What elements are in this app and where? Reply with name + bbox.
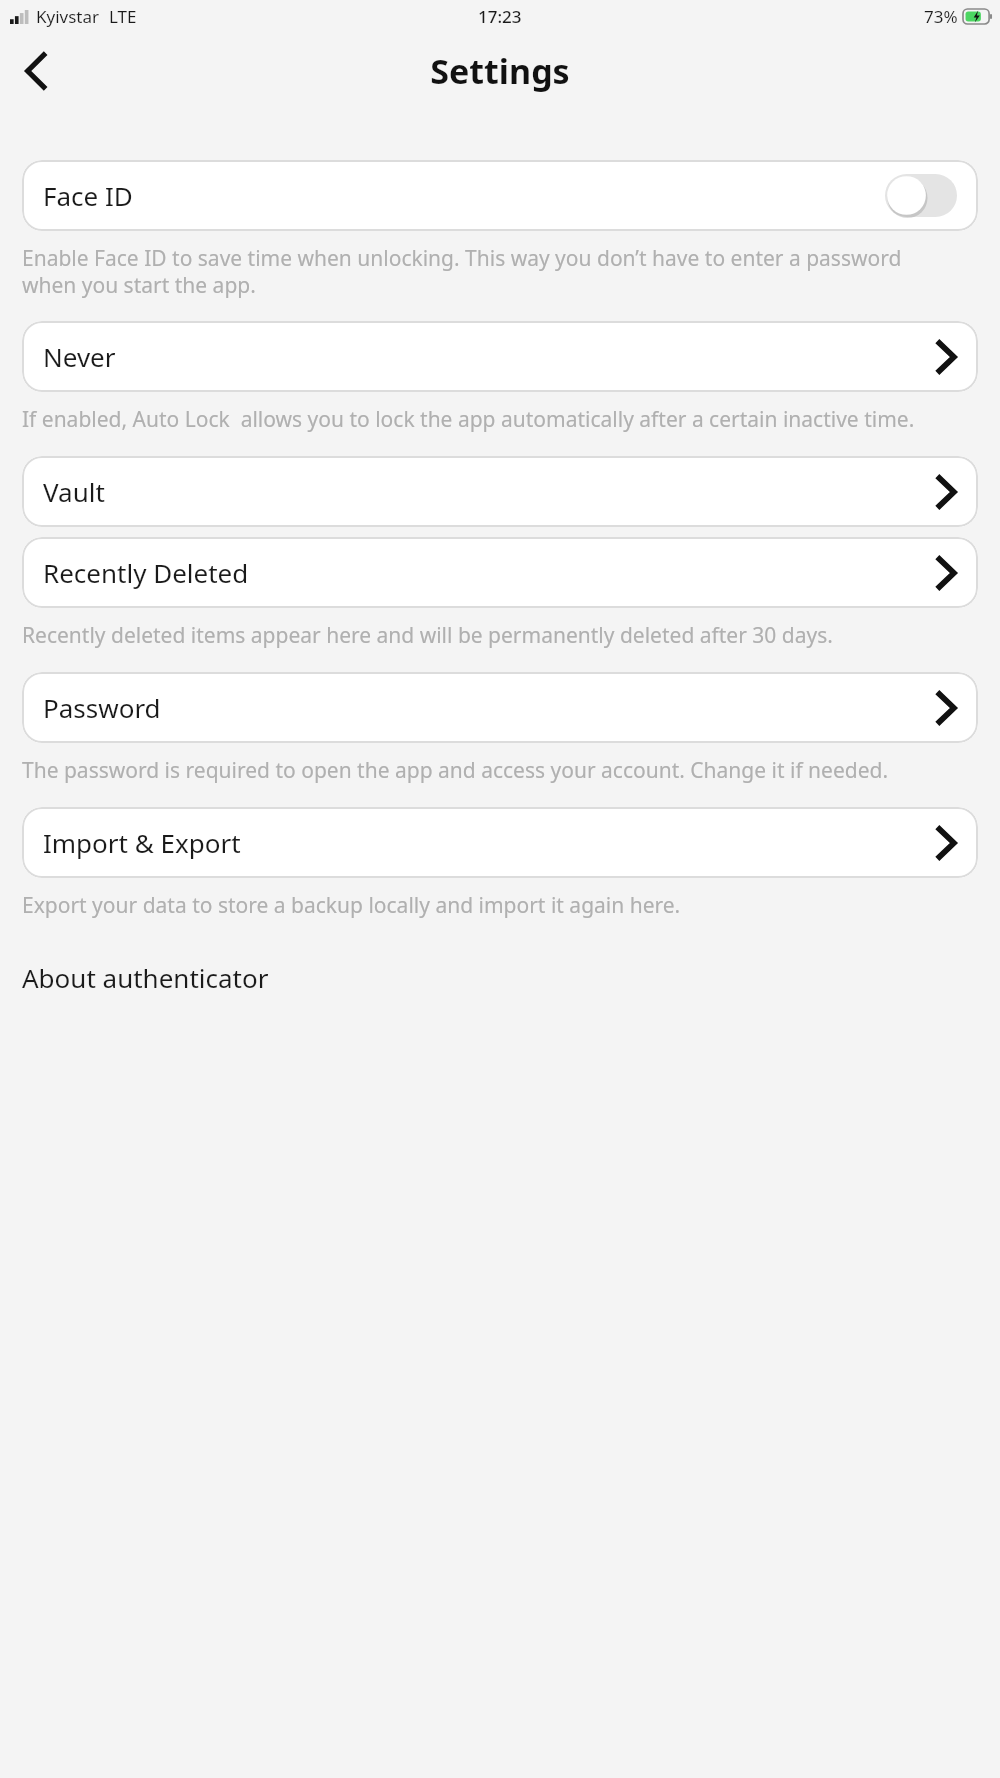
staticText: The password is required to open the app… [22,756,889,785]
button[interactable]: Never [22,321,978,392]
staticText: About authenticator [22,960,269,995]
staticText: Face ID [43,178,133,213]
staticText: Kyivstar [36,5,100,28]
button[interactable]: About authenticator [0,960,1000,995]
staticText: If enabled, Auto Lock allows you to lock… [22,405,915,434]
staticText: Vault [43,474,105,509]
staticText: Recently deleted items appear here and w… [22,621,833,650]
staticText: Enable Face ID to save time when unlocki… [22,244,960,299]
staticText: 73% [924,5,958,28]
staticText: Password [43,690,161,725]
staticText: Recently Deleted [43,555,249,590]
staticText: Import & Export [43,825,241,860]
button[interactable]: Password [22,672,978,743]
staticText: LTE [109,5,137,28]
button[interactable]: Back [8,43,64,99]
staticText: Settings [430,48,570,94]
staticText: 17:23 [478,5,522,28]
button[interactable]: Vault [22,456,978,527]
button[interactable]: Import & Export [22,807,978,878]
staticText: Never [43,339,116,374]
staticText: Export your data to store a backup local… [22,891,681,920]
button[interactable]: Face ID toggle [885,174,957,217]
button[interactable]: Recently Deleted [22,537,978,608]
button[interactable]: Face ID [22,160,978,231]
